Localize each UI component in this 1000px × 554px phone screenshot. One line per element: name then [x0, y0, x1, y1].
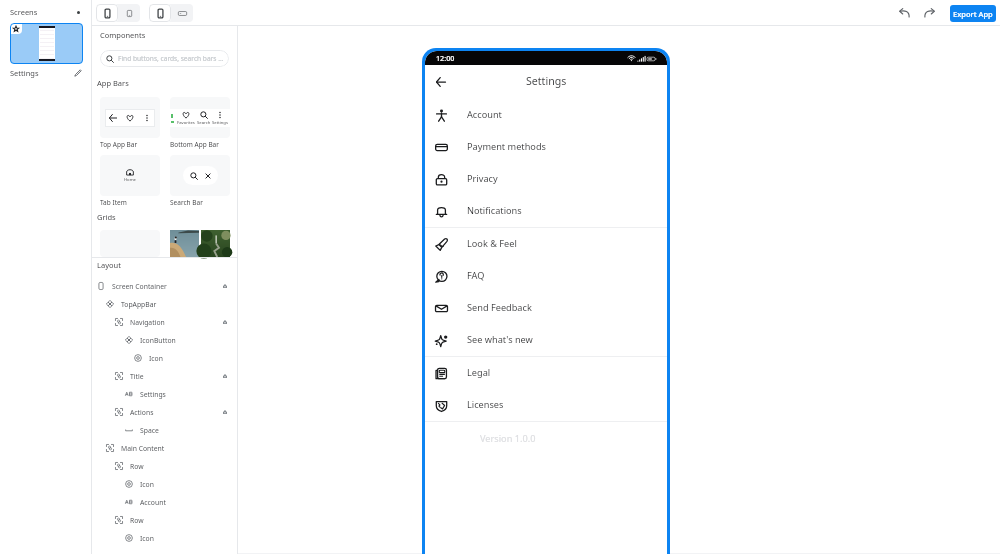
staticText: Account [467, 108, 502, 121]
staticText: FAQ [467, 269, 485, 282]
staticText: Space [140, 426, 159, 435]
button[interactable]: IconButton [92, 331, 238, 349]
staticText: See what's new [467, 333, 533, 346]
staticText: Legal [467, 366, 491, 379]
staticText: Export App [953, 9, 993, 19]
staticText: Row [130, 516, 144, 525]
staticText: Payment methods [467, 140, 546, 153]
staticText: Settings [526, 74, 567, 88]
staticText: IconButton [140, 336, 176, 345]
button[interactable]: portrait [149, 4, 171, 22]
button[interactable]: Send Feedback [425, 292, 667, 324]
staticText: Screen Container [112, 282, 167, 291]
button[interactable] [100, 97, 160, 138]
button[interactable]: Privacy [425, 163, 667, 195]
button[interactable] [201, 230, 230, 257]
staticText: Layout [97, 260, 121, 270]
button[interactable]: Notifications [425, 195, 667, 227]
button[interactable]: Favorites [170, 97, 230, 138]
staticText: Settings [140, 390, 166, 399]
button[interactable]: Find buttons, cards, search bars ... [100, 50, 229, 67]
staticText: Main Content [121, 444, 165, 453]
button[interactable] [170, 230, 199, 257]
button[interactable]: Account [92, 493, 238, 511]
staticText: Title [130, 372, 144, 381]
staticText: Icon [149, 354, 163, 363]
staticText: Bottom App Bar [170, 140, 219, 149]
staticText: Screens [10, 7, 38, 17]
staticText: Tab Item [100, 198, 127, 207]
button[interactable]: Icon [92, 475, 238, 493]
button[interactable]: Main Content [92, 439, 238, 457]
staticText: Send Feedback [467, 301, 532, 314]
button[interactable]: Row [92, 511, 238, 529]
button[interactable]: Legal [425, 357, 667, 389]
staticText: Search Bar [170, 198, 203, 207]
button[interactable]: Icon [92, 529, 238, 547]
button[interactable]: Licenses [425, 389, 667, 421]
button[interactable]: Navigation [92, 313, 238, 331]
staticText: Navigation [130, 318, 165, 327]
staticText: Search [197, 120, 211, 126]
button[interactable] [10, 23, 83, 64]
button[interactable]: TopAppBar [92, 295, 238, 313]
staticText: Privacy [467, 172, 498, 185]
button[interactable]: Export App [950, 5, 996, 22]
staticText: Favorites [177, 120, 195, 126]
button[interactable]: landscape [171, 4, 193, 22]
button[interactable]: See what's new [425, 324, 667, 356]
button[interactable]: FAQ [425, 260, 667, 292]
button[interactable] [170, 155, 230, 196]
staticText: Icon [140, 480, 154, 489]
button[interactable]: Screen Container [92, 277, 238, 295]
button[interactable]: Back [431, 72, 451, 92]
button[interactable]: Account [425, 99, 667, 131]
button[interactable]: Settings [92, 385, 238, 403]
button[interactable]: Home [100, 155, 160, 196]
staticText: TopAppBar [121, 300, 157, 309]
staticText: Top App Bar [100, 140, 138, 149]
staticText: Components [100, 30, 146, 40]
staticText: Find buttons, cards, search bars ... [118, 54, 224, 63]
button[interactable]: tablet [118, 4, 140, 22]
staticText: Account [140, 498, 166, 507]
button[interactable]: Actions [92, 403, 238, 421]
staticText: Row [130, 462, 144, 471]
staticText: Grids [97, 212, 116, 222]
button[interactable]: Undo [894, 3, 914, 23]
button[interactable]: Look & Feel [425, 228, 667, 260]
staticText: Home [124, 177, 136, 183]
staticText: Version 1.0.0 [480, 432, 536, 445]
staticText: Notifications [467, 204, 522, 217]
staticText: Settings [212, 120, 228, 126]
button[interactable]: Redo [919, 3, 939, 23]
staticText: 12:00 [436, 53, 455, 63]
staticText: Licenses [467, 398, 504, 411]
staticText: Icon [140, 534, 154, 543]
staticText: Actions [130, 408, 154, 417]
staticText: Settings [10, 68, 39, 78]
button[interactable]: Icon [92, 349, 238, 367]
staticText: App Bars [97, 78, 129, 88]
staticText: Look & Feel [467, 237, 517, 250]
button[interactable]: Space [92, 421, 238, 439]
button[interactable]: Row [92, 457, 238, 475]
button[interactable]: phone [96, 4, 118, 22]
button[interactable]: Add screen [73, 7, 83, 17]
button[interactable]: Payment methods [425, 131, 667, 163]
button[interactable]: Title [92, 367, 238, 385]
button[interactable]: Rename screen [73, 68, 83, 78]
